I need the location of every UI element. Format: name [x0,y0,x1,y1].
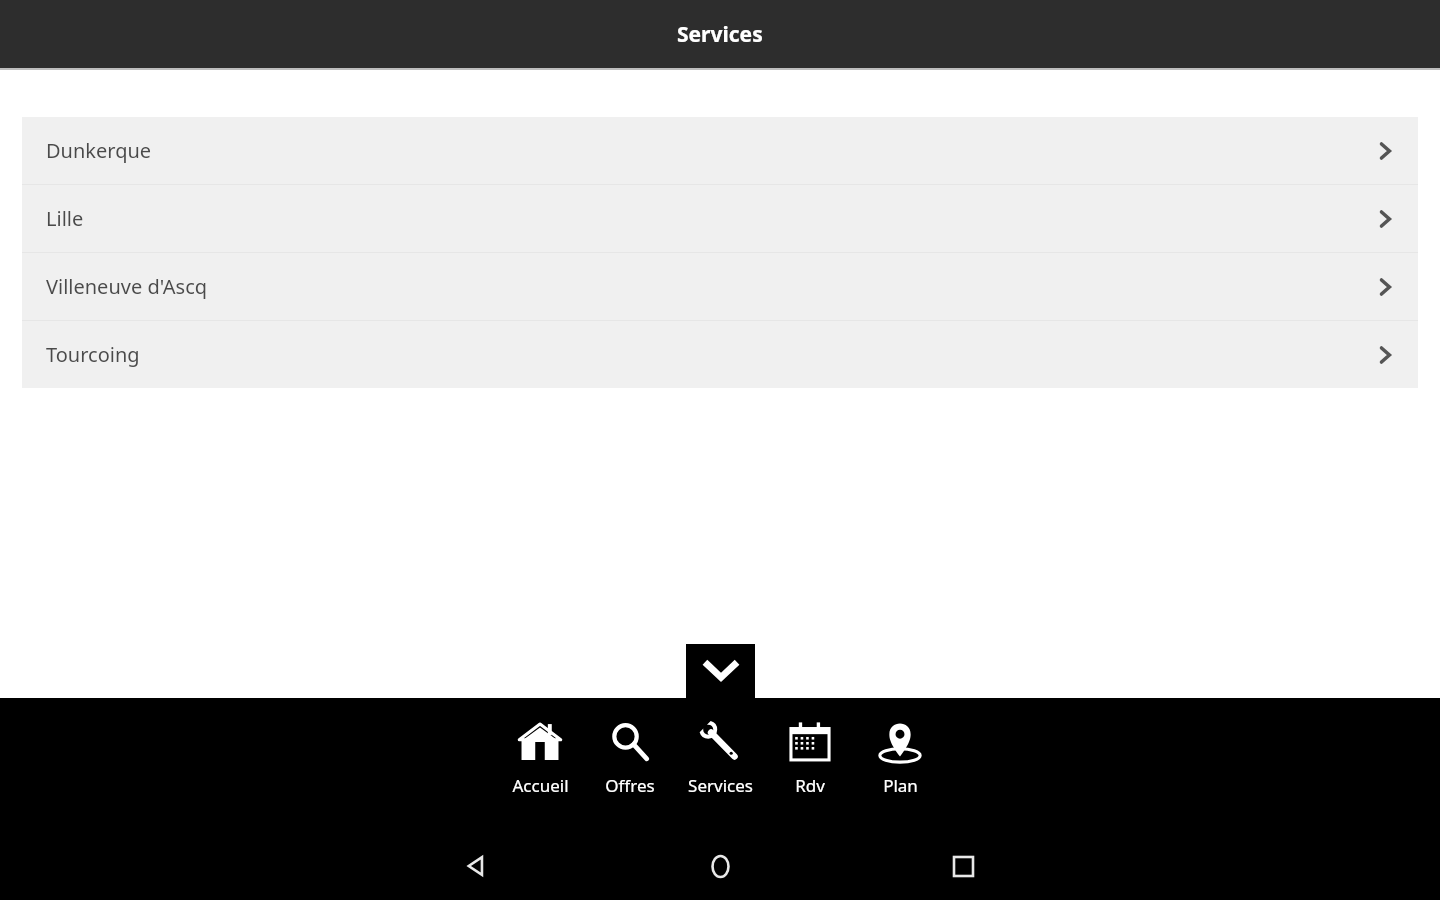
button[interactable]: Services [675,714,765,797]
staticText: Accueil [512,774,569,797]
button[interactable]: Tourcoing [22,321,1418,388]
button[interactable]: Villeneuve d'Ascq [22,253,1418,320]
button[interactable]: Masquer le menu [686,644,755,698]
button[interactable]: Applications récentes [940,843,986,889]
staticText: Lille [46,205,84,232]
button[interactable]: Retour [455,843,501,889]
staticText: Plan [883,774,918,797]
staticText: Services [677,20,763,49]
staticText: Rdv [795,774,825,797]
button[interactable]: Plan [855,714,945,797]
staticText: Dunkerque [46,137,152,164]
staticText: Tourcoing [46,341,140,368]
button[interactable]: Accueil [495,714,585,797]
staticText: Villeneuve d'Ascq [46,273,208,300]
button[interactable]: Rdv [765,714,855,797]
button[interactable]: Lille [22,185,1418,252]
button[interactable]: Accueil système [697,843,743,889]
button[interactable]: Offres [585,714,675,797]
staticText: Offres [605,774,655,797]
button[interactable]: Dunkerque [22,117,1418,184]
staticText: Services [688,774,753,797]
